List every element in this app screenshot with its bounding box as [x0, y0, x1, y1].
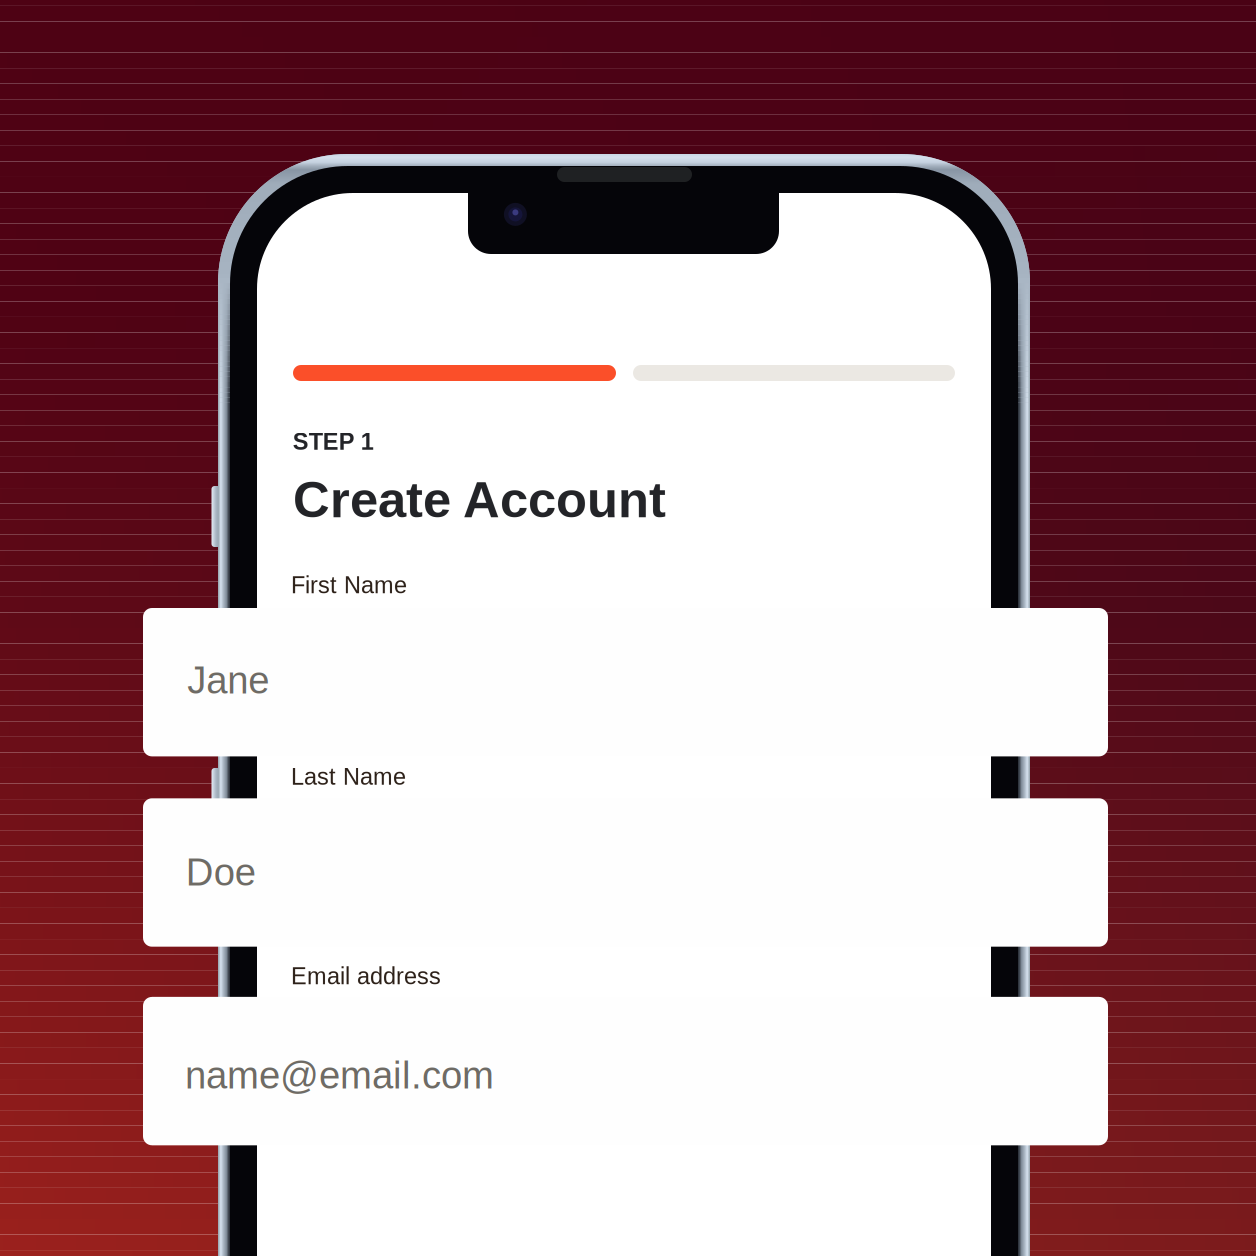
staticText: First Name [291, 572, 407, 598]
staticText: name@email.com [185, 1054, 494, 1097]
staticText: Doe [186, 851, 256, 894]
button[interactable]: Doe [143, 798, 1108, 947]
staticText: Create Account [293, 471, 666, 528]
staticText: Jane [187, 659, 269, 702]
button[interactable]: Jane [143, 608, 1108, 756]
staticText: Email address [291, 963, 441, 989]
staticText: STEP 1 [293, 428, 374, 455]
button[interactable]: name@email.com [143, 997, 1108, 1145]
staticText: Last Name [291, 764, 406, 790]
